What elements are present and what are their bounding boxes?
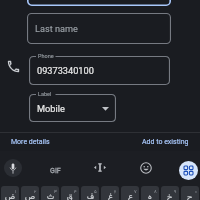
staticText: ۸	[154, 188, 157, 195]
staticText: ع	[128, 191, 133, 200]
staticText: ق	[67, 191, 73, 200]
staticText: Mobile	[37, 103, 65, 114]
staticText: ث	[47, 191, 54, 200]
staticText: ۷	[134, 188, 137, 195]
staticText: غ	[108, 191, 113, 200]
staticText: ۳	[54, 188, 57, 195]
staticText: ۲	[34, 188, 37, 195]
button[interactable]: ح	[181, 186, 199, 200]
button[interactable]: ع	[121, 186, 139, 200]
staticText: ه	[148, 191, 152, 200]
button[interactable]: Last name	[27, 13, 171, 44]
staticText: 09373340100	[37, 65, 94, 76]
button[interactable]: Add to existing	[142, 138, 189, 146]
staticText: خ	[167, 191, 173, 200]
button[interactable]: ق	[61, 186, 79, 200]
staticText: ۱	[15, 188, 17, 195]
button[interactable]: غ	[101, 186, 119, 200]
button[interactable]: ض	[1, 186, 19, 200]
button[interactable]	[27, 0, 171, 6]
button[interactable]: Phone	[29, 56, 170, 85]
button[interactable]: خ	[161, 186, 179, 200]
staticText: ۵	[94, 188, 97, 195]
button[interactable]: ص	[21, 186, 39, 200]
button[interactable]: Voice input	[4, 159, 22, 177]
button[interactable]: More details	[11, 138, 50, 146]
staticText: Label	[38, 91, 52, 97]
staticText: Phone	[38, 53, 54, 59]
staticText: ۰	[195, 188, 197, 195]
staticText: ۹	[174, 188, 177, 195]
button[interactable]: Move cursor	[94, 161, 106, 174]
button[interactable]: Emoji	[140, 162, 152, 174]
button[interactable]: ه	[141, 186, 159, 200]
staticText: Last name	[35, 23, 78, 34]
staticText: ۴	[74, 188, 77, 195]
staticText: ض	[5, 191, 15, 200]
button[interactable]: Phone	[6, 59, 21, 74]
staticText: ص	[25, 191, 35, 200]
staticText: Add to existing	[142, 138, 189, 146]
button[interactable]: More apps	[179, 161, 198, 180]
staticText: ف	[87, 191, 94, 200]
staticText: ۶	[114, 188, 117, 195]
staticText: GIF	[50, 166, 61, 174]
button[interactable]: GIF	[48, 164, 62, 175]
button[interactable]: Label	[29, 94, 116, 122]
staticText: ح	[187, 191, 193, 200]
button[interactable]: ف	[81, 186, 99, 200]
staticText: More details	[11, 138, 50, 146]
button[interactable]: ث	[41, 186, 59, 200]
